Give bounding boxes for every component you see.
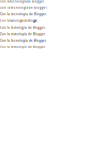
staticText: Con la tecnología de Blogger. <box>0 26 46 30</box>
staticText: Con la tecnología de Blogger. <box>0 6 48 9</box>
staticText: Con la tecnología de Blogger. <box>0 12 47 16</box>
staticText: Con la tecnología de Blogger. <box>0 19 38 23</box>
staticText: Con la tecnología de Blogger. <box>0 33 46 36</box>
staticText: Con la tecnología de Blogger. <box>0 45 46 48</box>
staticText: Con la tecnología de Blogger. <box>0 39 47 42</box>
staticText: Con la tecnología de Blogger. <box>0 0 45 3</box>
